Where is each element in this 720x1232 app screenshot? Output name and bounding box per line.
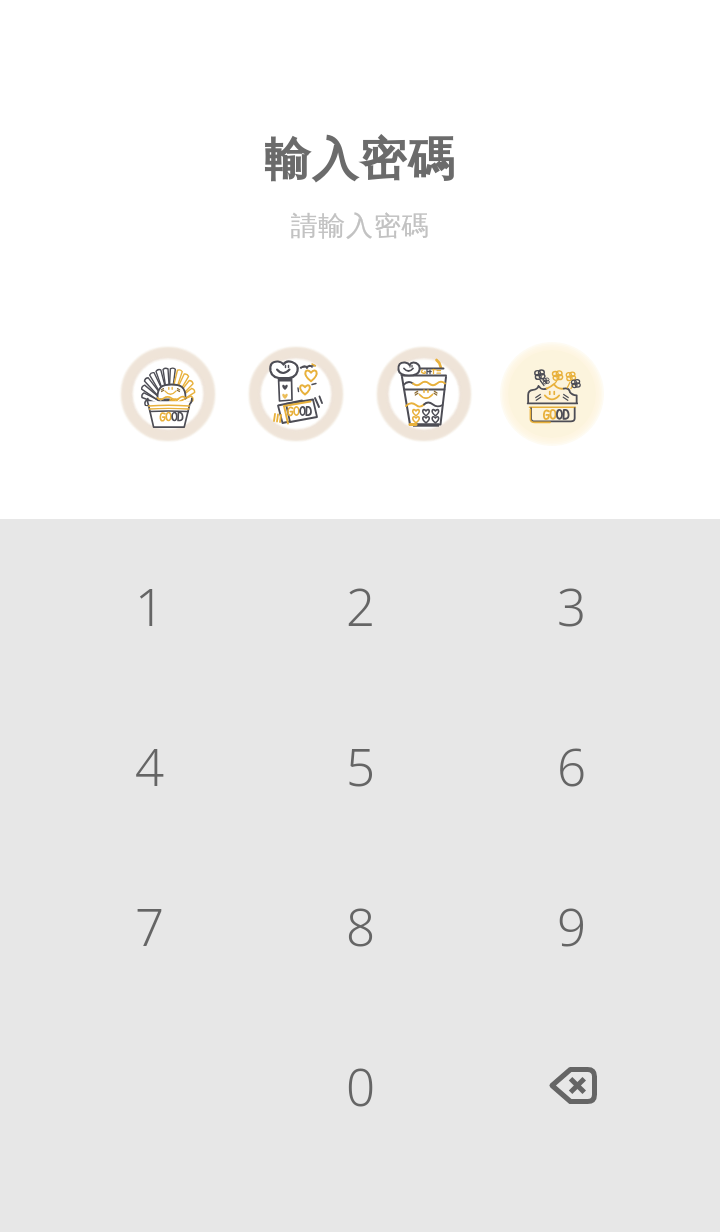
staticText: 0 [346,1051,376,1120]
staticText: 4 [135,731,165,800]
button[interactable]: 8 [255,845,466,1005]
button[interactable]: 5 [255,685,466,845]
staticText: 5 [346,731,376,800]
button[interactable]: 6 [466,685,677,845]
staticText: 3 [557,571,587,640]
button[interactable]: 3 [466,525,677,685]
button[interactable]: 7 [44,845,255,1005]
staticText: 輸入密碼 [0,131,720,189]
staticText: 請輸入密碼 [0,209,720,243]
button[interactable]: Passcode digit 2 [244,342,348,446]
button[interactable]: 2 [255,525,466,685]
button[interactable]: 0 [255,1005,466,1165]
button[interactable]: 1 [44,525,255,685]
button[interactable]: 4 [44,685,255,845]
staticText: 6 [557,731,587,800]
button[interactable]: Passcode digit 3 [372,342,476,446]
staticText: 2 [346,571,376,640]
staticText: 7 [135,891,165,960]
button[interactable]: Passcode digit 1 [116,342,220,446]
staticText: 8 [346,891,376,960]
button[interactable]: 9 [466,845,677,1005]
staticText: 1 [135,571,165,640]
staticText: 9 [557,891,587,960]
button[interactable]: Passcode digit 4 [500,342,604,446]
button[interactable]: Delete [466,1005,677,1165]
